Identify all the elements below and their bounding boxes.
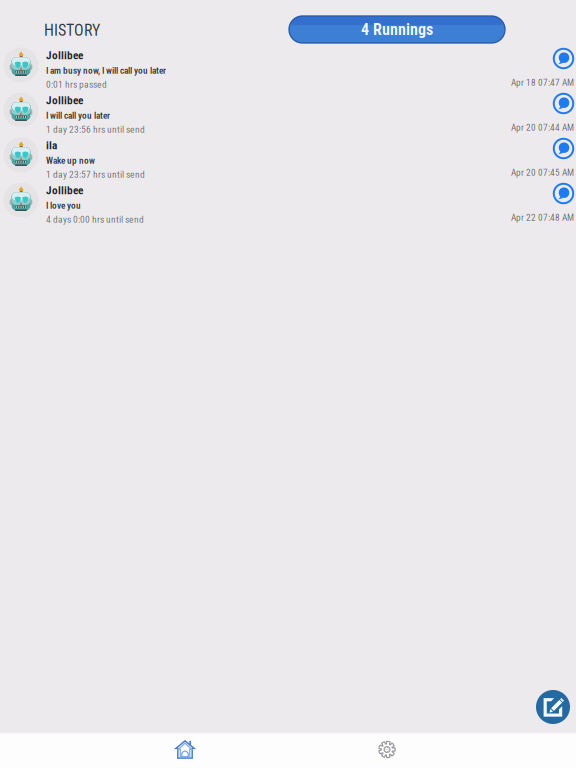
staticText: Apr 20 07:44 AM — [511, 122, 574, 133]
button[interactable]: Jollibee — [0, 180, 511, 225]
staticText: 4 days 0:00 hrs until send — [46, 214, 144, 225]
button[interactable]: Home — [148, 731, 222, 768]
button[interactable]: Compose message — [536, 690, 570, 724]
button[interactable]: ila — [0, 135, 511, 180]
button[interactable]: Open conversation with Jollibee, Apr 20 … — [511, 90, 576, 135]
staticText: I will call you later — [46, 110, 110, 121]
button[interactable]: Jollibee — [0, 45, 511, 90]
staticText: Apr 20 07:45 AM — [511, 167, 574, 178]
staticText: Apr 18 07:47 AM — [511, 77, 574, 88]
button[interactable]: Jollibee — [0, 90, 511, 135]
staticText: Jollibee — [46, 49, 83, 62]
staticText: HISTORY — [44, 21, 100, 40]
button[interactable]: Open conversation with Jollibee, Apr 18 … — [511, 45, 576, 90]
button[interactable]: 4 Runnings — [289, 16, 505, 43]
staticText: Jollibee — [46, 94, 83, 107]
staticText: Jollibee — [46, 184, 83, 197]
staticText: Wake up now — [46, 155, 95, 166]
button[interactable]: Open conversation with ila, Apr 20 07:45… — [511, 135, 576, 180]
staticText: 1 day 23:56 hrs until send — [46, 124, 145, 135]
staticText: I love you — [46, 200, 81, 211]
staticText: ila — [46, 139, 57, 152]
button[interactable]: Open conversation with Jollibee, Apr 22 … — [511, 180, 576, 225]
staticText: I am busy now, I will call you later — [46, 65, 166, 76]
staticText: 0:01 hrs passed — [46, 79, 107, 90]
staticText: 4 Runnings — [361, 20, 433, 39]
staticText: 1 day 23:57 hrs until send — [46, 169, 145, 180]
staticText: Apr 22 07:48 AM — [511, 212, 574, 223]
button[interactable]: Settings — [350, 731, 424, 768]
